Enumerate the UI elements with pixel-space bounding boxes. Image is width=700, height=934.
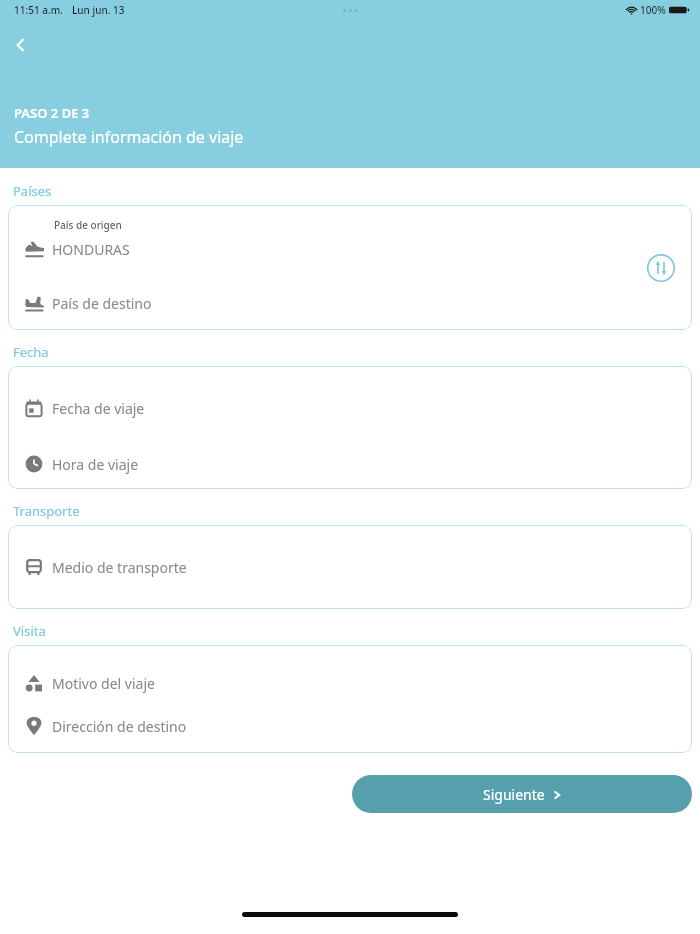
staticText: Dirección de destino (52, 717, 187, 736)
staticText: PASO 2 DE 3 (14, 104, 90, 122)
button[interactable]: Fecha de viaje (8, 366, 692, 489)
staticText: 11:51 a.m. (14, 3, 63, 17)
staticText: Medio de transporte (52, 558, 187, 577)
staticText: Lun jun. 13 (72, 3, 125, 17)
button[interactable]: Atrás (4, 28, 38, 62)
staticText: Complete información de viaje (14, 126, 244, 148)
staticText: 100% (640, 3, 666, 17)
button[interactable]: Motivo del viaje (8, 645, 692, 753)
staticText: Países (13, 182, 52, 200)
staticText: País de destino (52, 294, 152, 313)
staticText: Transporte (13, 502, 80, 520)
button[interactable]: Medio de transporte (8, 525, 692, 609)
staticText: Siguiente (483, 785, 545, 804)
staticText: Fecha (13, 343, 49, 361)
button[interactable]: Siguiente (352, 775, 692, 813)
staticText: Fecha de viaje (52, 399, 145, 418)
button[interactable]: País de origen (8, 205, 692, 330)
staticText: País de origen (54, 218, 122, 232)
staticText: HONDURAS (52, 240, 130, 259)
staticText: Visita (13, 622, 46, 640)
staticText: Motivo del viaje (52, 674, 155, 693)
button[interactable]: Intercambiar países (646, 253, 676, 283)
staticText: Hora de viaje (52, 455, 139, 474)
